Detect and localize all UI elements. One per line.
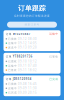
staticText: 运输中 bbox=[8, 42, 17, 45]
staticText: 09-09 11:30 bbox=[18, 86, 37, 90]
button[interactable]: 订单 YT88201736 bbox=[3, 53, 60, 74]
staticText: 09-13 09:20 bbox=[18, 46, 37, 49]
staticText: 订单 YT88201736 bbox=[6, 55, 33, 58]
staticText: 运输中 bbox=[49, 32, 58, 36]
staticText: 09-10 10:12 bbox=[18, 60, 37, 63]
staticText: 订单 JD55120934 bbox=[6, 77, 32, 81]
staticText: 已签收 bbox=[49, 55, 58, 58]
staticText: 09-09 20:15 bbox=[18, 91, 37, 94]
button[interactable]: 订单 SF10293847 bbox=[3, 30, 60, 51]
staticText: 已揽收 bbox=[8, 60, 17, 63]
staticText: 运输中 bbox=[8, 64, 17, 67]
staticText: 派送中 bbox=[8, 46, 17, 49]
staticText: 09-11 07:40 bbox=[18, 64, 37, 67]
staticText: 实时查看您的订单配送进度 bbox=[14, 14, 50, 17]
staticText: 已完成 bbox=[49, 77, 58, 81]
staticText: 已完成 bbox=[8, 91, 17, 94]
staticText: 已签收 bbox=[8, 68, 17, 72]
staticText: 搜索订单号 bbox=[24, 23, 39, 26]
staticText: 09-11 18:02 bbox=[18, 68, 37, 72]
staticText: 09-12 14:05 bbox=[18, 41, 37, 45]
staticText: 订单 SF10293847 bbox=[6, 32, 31, 36]
staticText: 订单跟踪 bbox=[18, 4, 46, 12]
staticText: 09-12 08:30 bbox=[18, 37, 37, 41]
button[interactable]: 订单 JD55120934 bbox=[3, 75, 60, 96]
staticText: 已揽收 bbox=[8, 82, 17, 86]
staticText: 运输中 bbox=[8, 87, 17, 90]
staticText: 已揽收 bbox=[8, 37, 17, 40]
staticText: 09-08 16:45 bbox=[18, 82, 37, 86]
button[interactable]: 搜索订单号 bbox=[7, 22, 57, 28]
